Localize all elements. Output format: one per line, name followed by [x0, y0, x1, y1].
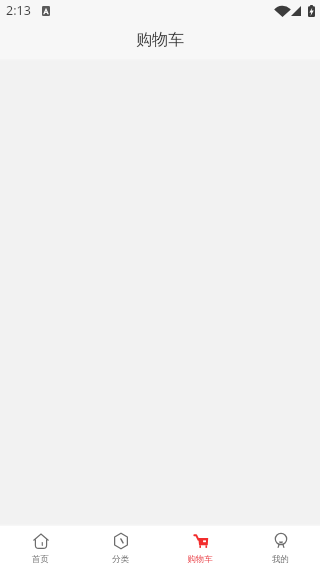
- staticText: 购物车: [136, 30, 184, 50]
- staticText: 购物车: [187, 554, 213, 565]
- staticText: 我的: [272, 554, 289, 565]
- staticText: 分类: [112, 554, 129, 565]
- staticText: 首页: [32, 554, 49, 565]
- button[interactable]: 首页: [0, 526, 80, 568]
- button[interactable]: 分类: [80, 526, 160, 568]
- staticText: 2:13: [6, 2, 31, 19]
- button[interactable]: 购物车: [160, 526, 240, 568]
- button[interactable]: 我的: [240, 526, 320, 568]
